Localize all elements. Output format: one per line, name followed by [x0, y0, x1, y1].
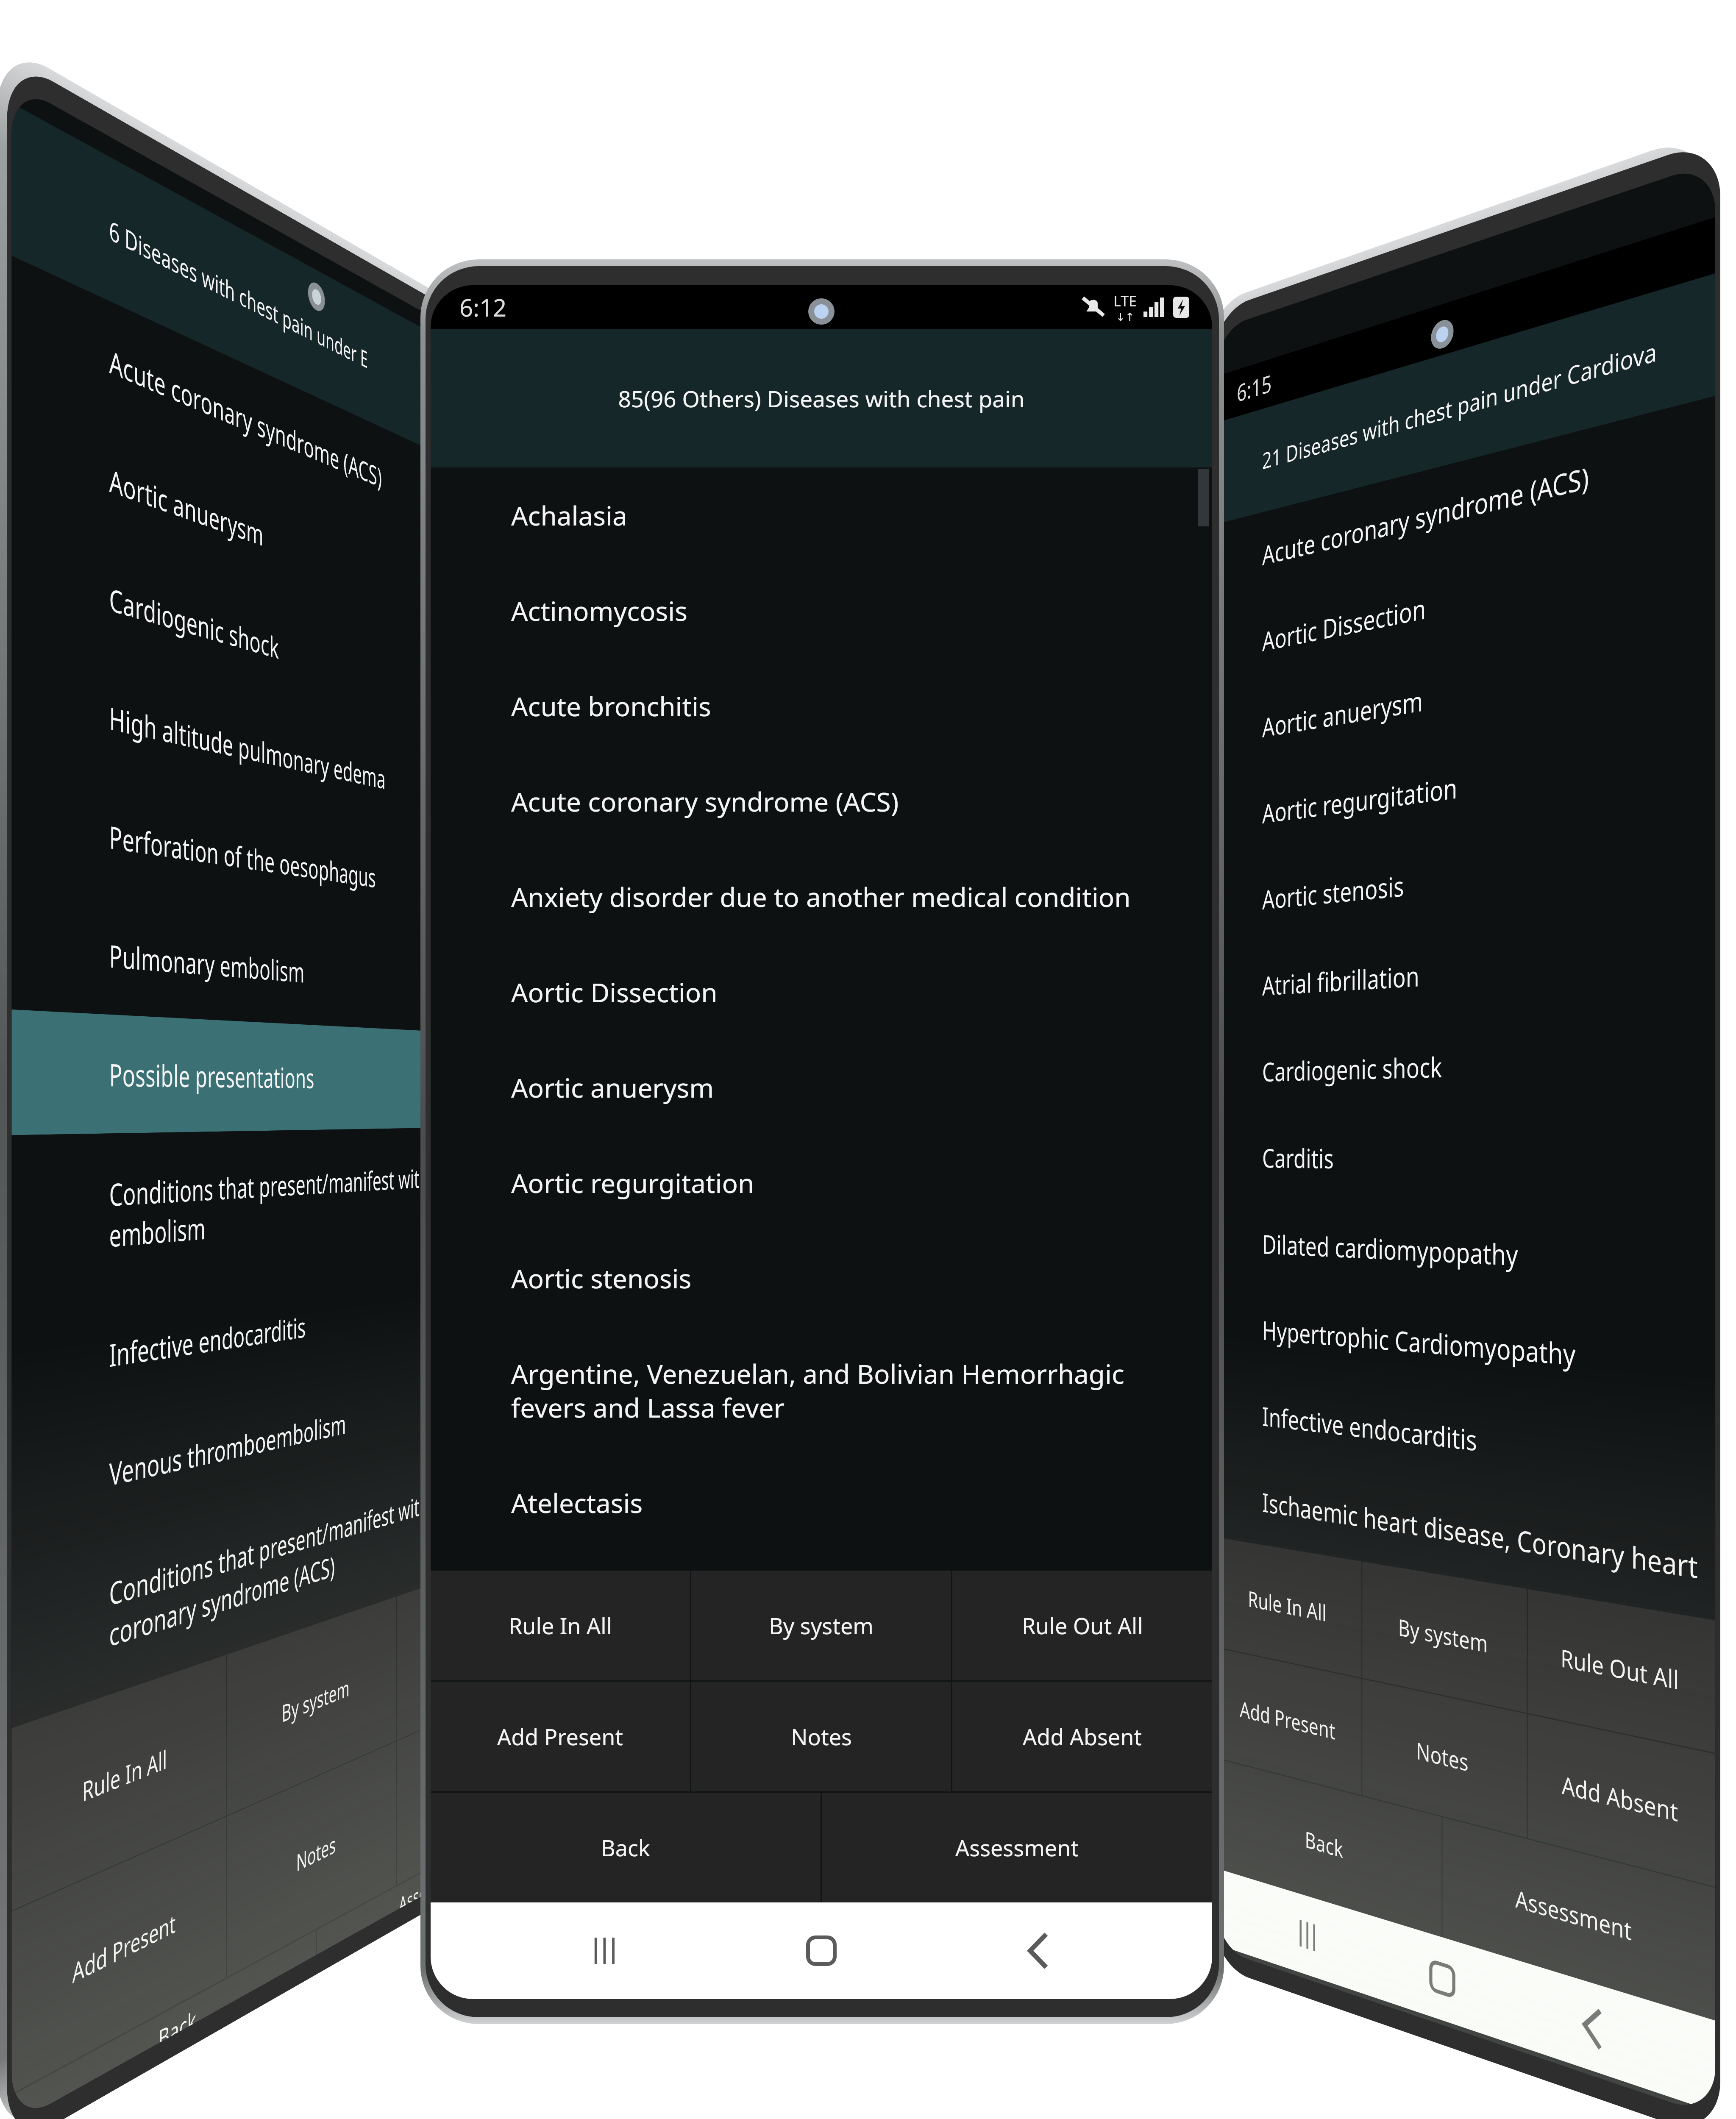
staticText: Aortic stenosis: [511, 1260, 692, 1296]
button[interactable]: Notes: [691, 1682, 951, 1791]
button[interactable]: Acute bronchitis: [431, 658, 1212, 754]
staticText: Add Absent: [1023, 1721, 1142, 1752]
button[interactable]: Notes: [227, 1742, 396, 1977]
staticText: Cardiogenic shock: [109, 577, 279, 667]
button[interactable]: Back: [431, 1793, 821, 1902]
button[interactable]: Recent apps: [562, 1908, 647, 1993]
staticText: ↓↑: [1116, 311, 1135, 323]
staticText: 6 Diseases with chest pain under E: [109, 211, 368, 375]
button[interactable]: Aortic Dissection: [1216, 498, 1715, 693]
staticText: Assessment: [955, 1833, 1079, 1863]
button[interactable]: Venous thromboembolism: [12, 1338, 534, 1557]
button[interactable]: Actinomycosis: [431, 563, 1212, 658]
button[interactable]: Achalasia: [431, 467, 1212, 563]
button[interactable]: Add Absent: [952, 1682, 1212, 1791]
button[interactable]: Rule Out All: [1528, 1589, 1715, 1753]
button[interactable]: Add Absent: [1528, 1714, 1715, 1887]
staticText: 21 Diseases with chest pain under Cardio…: [1262, 333, 1657, 476]
button[interactable]: Infective endocarditis: [12, 1248, 534, 1432]
staticText: Atrial fibrillation: [1262, 957, 1419, 1003]
button[interactable]: Acute coronary syndrome (ACS): [12, 256, 534, 588]
button[interactable]: Conditions that present/manifest with co…: [12, 1428, 534, 1728]
staticText: Aortic Dissection: [1262, 589, 1426, 659]
button[interactable]: Back: [1552, 1971, 1633, 2085]
button[interactable]: Perforation of the oesophagus: [12, 758, 534, 947]
button[interactable]: Assessment: [317, 1812, 534, 1955]
staticText: Dilated cardiomypopathy: [1262, 1226, 1518, 1274]
button[interactable]: Notes: [1362, 1679, 1527, 1838]
staticText: Notes: [1416, 1734, 1469, 1778]
button[interactable]: Infective endocarditis: [1216, 1368, 1715, 1518]
button[interactable]: Rule In All: [431, 1571, 690, 1680]
staticText: Assessment: [399, 1854, 467, 1909]
staticText: Aortic anuerysm: [1262, 681, 1423, 745]
button[interactable]: Recent apps: [1275, 1886, 1341, 1986]
staticText: Rule In All: [82, 1741, 167, 1810]
button[interactable]: Aortic stenosis: [431, 1230, 1212, 1326]
button[interactable]: Aortic stenosis: [1216, 804, 1715, 946]
button[interactable]: Add Present: [12, 1817, 226, 2094]
button[interactable]: Aortic regurgitation: [1216, 702, 1715, 862]
staticText: Carditis: [1262, 1140, 1334, 1177]
button[interactable]: Add Present: [1216, 1648, 1361, 1795]
button[interactable]: By system: [227, 1597, 396, 1815]
button[interactable]: Atelectasis: [431, 1455, 1212, 1550]
button[interactable]: Rule Out All: [952, 1571, 1212, 1680]
button[interactable]: Rule In All: [12, 1655, 226, 1910]
button[interactable]: Dilated cardiomypopathy: [1216, 1200, 1715, 1314]
staticText: Add Present: [1240, 1694, 1335, 1746]
button[interactable]: Pulmonary embolism: [12, 884, 534, 1036]
staticText: By system: [769, 1610, 874, 1641]
staticText: Acute coronary syndrome (ACS): [1262, 457, 1589, 573]
button[interactable]: Cardiogenic shock: [1216, 1008, 1715, 1115]
button[interactable]: Back: [1216, 1759, 1442, 1937]
staticText: 6:12: [459, 291, 507, 323]
staticText: Back: [601, 1833, 650, 1863]
button[interactable]: Acute coronary syndrome (ACS): [431, 754, 1212, 849]
button[interactable]: Cardiogenic shock: [12, 507, 534, 767]
staticText: Aortic stenosis: [1262, 867, 1404, 917]
staticText: Assessment: [1515, 1882, 1632, 1948]
staticText: Notes: [296, 1828, 336, 1879]
button[interactable]: Atrial fibrillation: [1216, 906, 1715, 1031]
button[interactable]: Assessment: [822, 1793, 1212, 1902]
button[interactable]: Argentine, Venezuelan, and Bolivian Hemo…: [431, 1326, 1212, 1455]
staticText: 6:15: [1237, 367, 1272, 409]
button[interactable]: By system: [691, 1571, 951, 1680]
button[interactable]: Add Present: [431, 1682, 690, 1791]
staticText: Aortic Dissection: [511, 974, 718, 1010]
button[interactable]: High altitude pulmonary edema: [12, 633, 534, 857]
button[interactable]: Aortic anuerysm: [1216, 600, 1715, 778]
button[interactable]: By system: [1362, 1562, 1527, 1713]
button[interactable]: Aortic anuerysm: [12, 381, 534, 678]
button[interactable]: Assessment: [1443, 1817, 1715, 2021]
staticText: Aortic regurgitation: [1262, 768, 1457, 831]
button[interactable]: Aortic regurgitation: [431, 1135, 1212, 1230]
staticText: Rule In All: [509, 1610, 612, 1641]
button[interactable]: Add Absent: [397, 1681, 534, 1885]
button[interactable]: Back: [996, 1908, 1080, 1993]
staticText: Rule Out All: [1561, 1641, 1679, 1697]
button[interactable]: Back: [12, 1930, 316, 2119]
button[interactable]: Conditions that present/manifest with em…: [12, 1126, 534, 1306]
button[interactable]: Rule Out All: [397, 1550, 534, 1740]
staticText: Infective endocarditis: [1262, 1398, 1477, 1460]
button[interactable]: Carditis: [1216, 1110, 1715, 1212]
button[interactable]: Aortic anuerysm: [431, 1040, 1212, 1135]
staticText: Perforation of the oesophagus: [109, 815, 376, 895]
button[interactable]: Home: [779, 1908, 864, 1993]
button[interactable]: Acute coronary syndrome (ACS): [1216, 396, 1715, 609]
staticText: Back: [158, 2002, 196, 2043]
button[interactable]: Anxiety disorder due to another medical …: [431, 849, 1212, 944]
button[interactable]: Hypertrophic Cardiomyopathy: [1216, 1284, 1715, 1416]
button[interactable]: Ischaemic heart disease, Coronary heart: [1216, 1453, 1715, 1620]
button[interactable]: Possible presentations: [12, 1009, 534, 1135]
staticText: Ischaemic heart disease, Coronary heart: [1262, 1484, 1698, 1588]
staticText: Possible presentations: [109, 1053, 314, 1096]
staticText: Actinomycosis: [511, 593, 687, 628]
button[interactable]: Aortic Dissection: [431, 944, 1212, 1040]
staticText: Add Present: [72, 1905, 176, 1991]
button[interactable]: Rule In All: [1216, 1537, 1361, 1678]
button[interactable]: Home: [1406, 1926, 1479, 2033]
